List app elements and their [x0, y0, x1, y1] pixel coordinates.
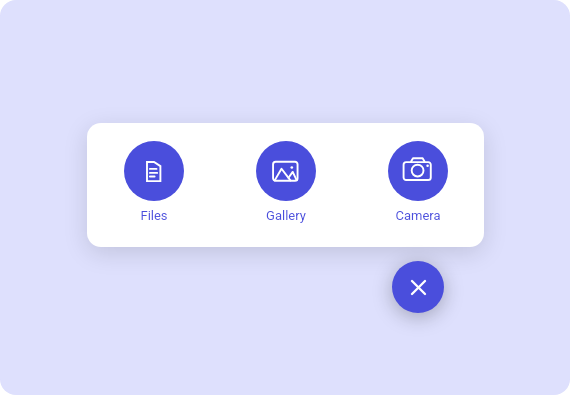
- staticText: Gallery: [266, 208, 306, 223]
- button[interactable]: Files: [87, 123, 220, 247]
- button[interactable]: Gallery: [220, 123, 352, 247]
- button[interactable]: Close: [392, 261, 444, 313]
- staticText: Files: [140, 208, 168, 223]
- staticText: Camera: [395, 208, 441, 223]
- button[interactable]: Camera: [352, 123, 484, 247]
